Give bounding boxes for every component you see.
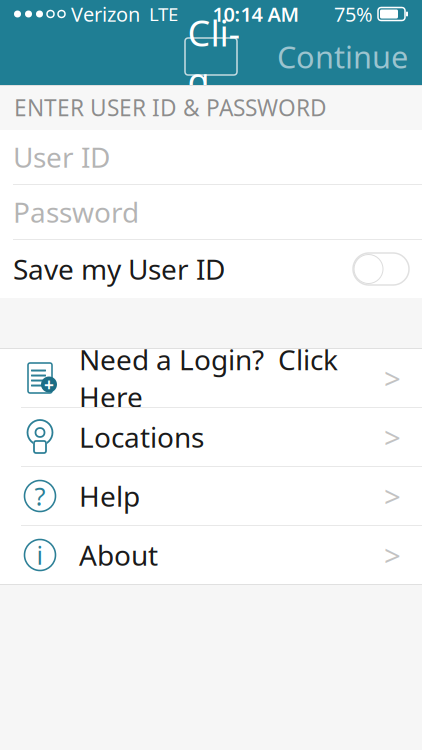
staticText: Help (79, 477, 140, 515)
staticText: ENTER USER ID & PASSWORD (14, 92, 327, 122)
staticText: Cliq (187, 9, 240, 104)
button[interactable]: Continue (277, 36, 422, 77)
staticText: Need a Login? Click Here (79, 341, 338, 415)
staticText: + (44, 373, 54, 396)
staticText: 75% (334, 1, 373, 27)
staticText: ? (34, 479, 45, 513)
staticText: 10:14 AM (212, 1, 299, 27)
staticText: Verizon (71, 1, 140, 27)
staticText: User ID (13, 138, 110, 176)
button[interactable]: Save my User ID (0, 240, 422, 298)
staticText: i (36, 538, 43, 572)
staticText: Password (13, 193, 139, 231)
staticText: > (384, 535, 401, 574)
staticText: > (384, 417, 401, 456)
staticText: Continue (277, 36, 408, 77)
staticText: > (384, 476, 401, 515)
button[interactable]: Locations (0, 408, 422, 466)
staticText: About (79, 536, 158, 574)
staticText: Save my User ID (13, 250, 225, 288)
staticText: > (384, 358, 401, 397)
staticText: Locations (79, 418, 204, 456)
button[interactable]: + (0, 349, 422, 407)
button[interactable]: i (0, 526, 422, 584)
staticText: LTE (149, 2, 178, 26)
button[interactable]: ? (0, 467, 422, 525)
